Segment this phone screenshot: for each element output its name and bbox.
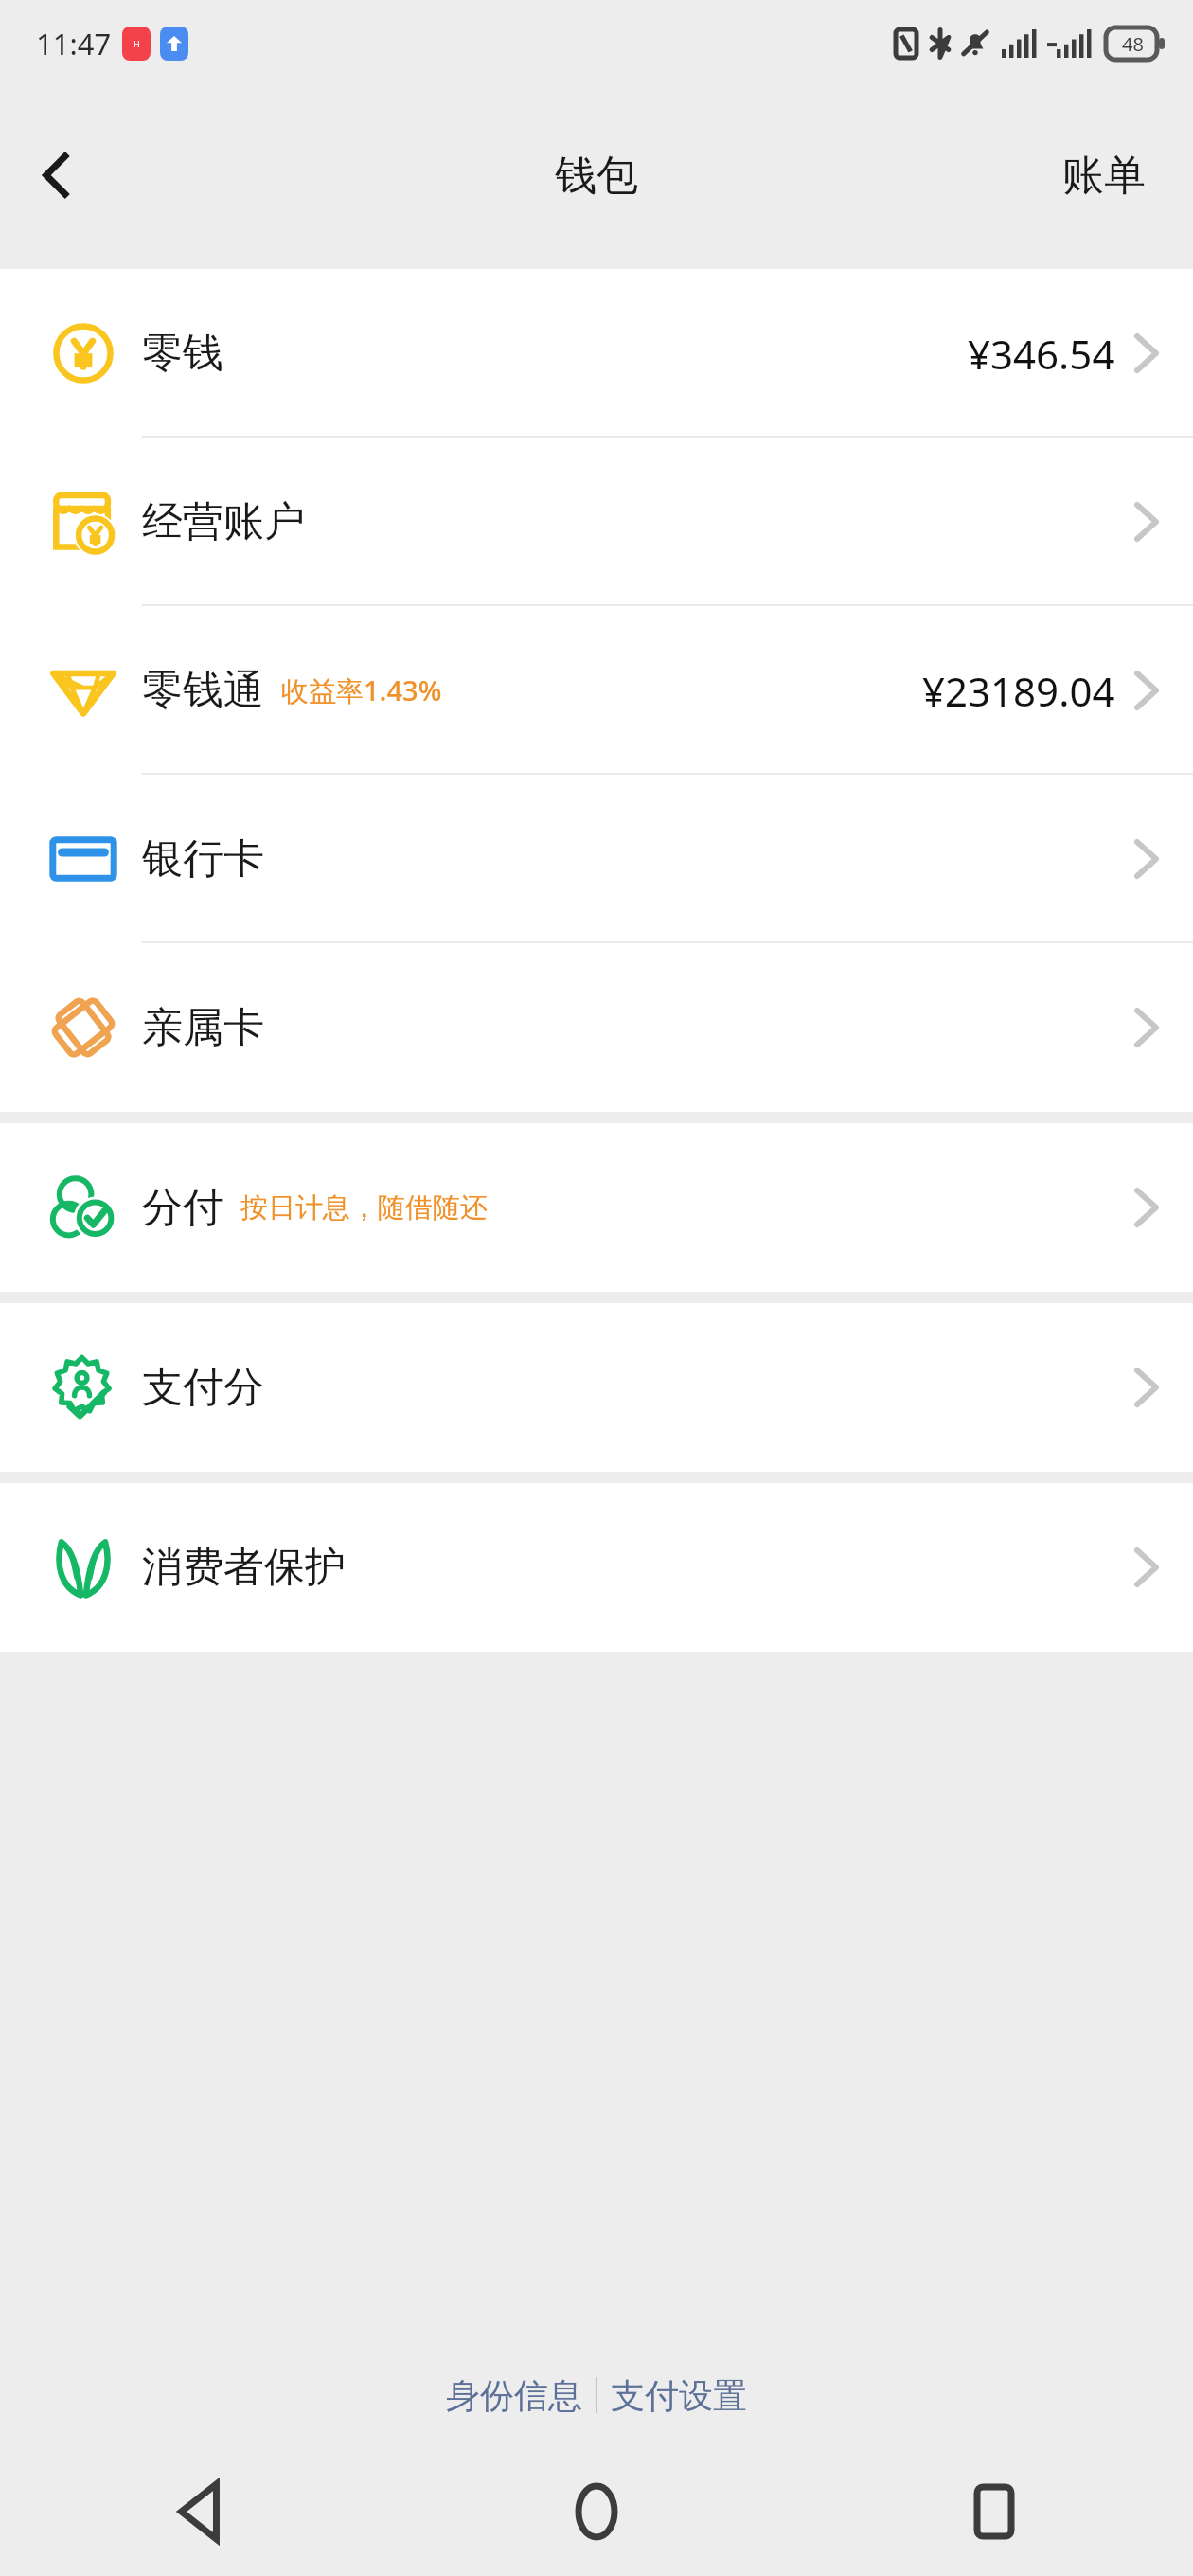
- staticText: 账单: [1062, 150, 1146, 202]
- staticText: 11:47: [36, 24, 112, 63]
- staticText: 银行卡: [142, 833, 264, 885]
- staticText: 身份信息: [446, 2374, 582, 2417]
- staticText: 支付分: [142, 1362, 264, 1413]
- staticText: 亲属卡: [142, 1002, 264, 1053]
- staticText: 48: [1122, 31, 1144, 57]
- staticText: 零钱: [142, 328, 223, 379]
- staticText: 消费者保护: [142, 1542, 346, 1593]
- staticText: ¥346.54: [968, 327, 1115, 381]
- button[interactable]: 零钱通: [0, 606, 1193, 775]
- staticText: 收益率1.43%: [281, 671, 442, 709]
- staticText: 支付设置: [611, 2374, 747, 2417]
- button[interactable]: 亲属卡: [0, 943, 1193, 1112]
- staticText: 分付: [142, 1182, 223, 1233]
- button[interactable]: 支付分: [0, 1303, 1193, 1472]
- button[interactable]: Recents: [795, 2447, 1193, 2576]
- button[interactable]: 身份信息: [433, 2365, 596, 2426]
- button[interactable]: 消费者保护: [0, 1483, 1193, 1652]
- button[interactable]: 零钱: [0, 269, 1193, 438]
- button[interactable]: 分付: [0, 1123, 1193, 1292]
- button[interactable]: 经营账户: [0, 438, 1193, 606]
- staticText: 经营账户: [142, 496, 305, 547]
- button[interactable]: Back: [0, 2447, 398, 2576]
- button[interactable]: 账单: [1051, 138, 1157, 213]
- staticText: 按日计息，随借随还: [240, 1190, 488, 1225]
- staticText: ¥23189.04: [922, 664, 1115, 718]
- staticText: 钱包: [555, 150, 638, 202]
- staticText: 零钱通: [142, 665, 264, 716]
- button[interactable]: Home: [398, 2447, 795, 2576]
- button[interactable]: 银行卡: [0, 775, 1193, 943]
- button[interactable]: Back: [0, 118, 114, 232]
- staticText: H: [134, 38, 140, 49]
- button[interactable]: 支付设置: [597, 2365, 760, 2426]
